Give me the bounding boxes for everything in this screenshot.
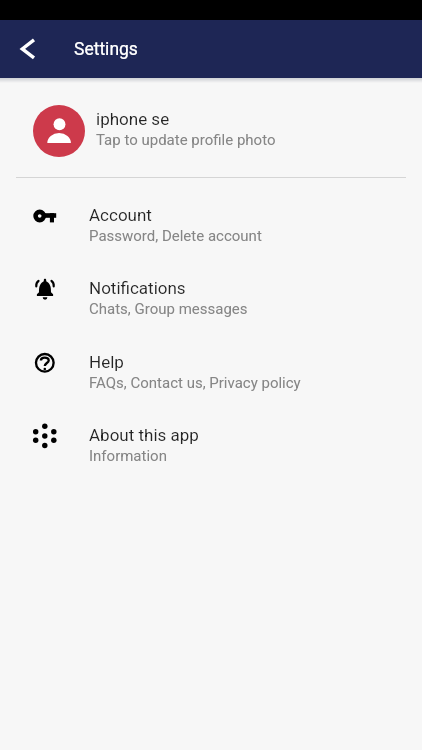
staticText: FAQs, Contact us, Privacy policy: [89, 374, 301, 392]
staticText: Notifications: [89, 278, 186, 298]
staticText: Password, Delete account: [89, 227, 262, 245]
staticText: Account: [89, 205, 152, 225]
staticText: Settings: [74, 39, 138, 60]
staticText: Chats, Group messages: [89, 300, 248, 318]
staticText: About this app: [89, 425, 199, 445]
button[interactable]: Back: [4, 28, 52, 76]
staticText: iphone se: [96, 109, 170, 129]
button[interactable]: Notifications: [0, 250, 422, 323]
staticText: Information: [89, 447, 167, 465]
staticText: Tap to update profile photo: [96, 131, 276, 149]
button[interactable]: Help: [0, 324, 422, 397]
button[interactable]: About this app: [0, 397, 422, 470]
staticText: Help: [89, 352, 124, 372]
button[interactable]: Account: [0, 177, 422, 250]
button[interactable]: iphone se: [0, 76, 422, 176]
